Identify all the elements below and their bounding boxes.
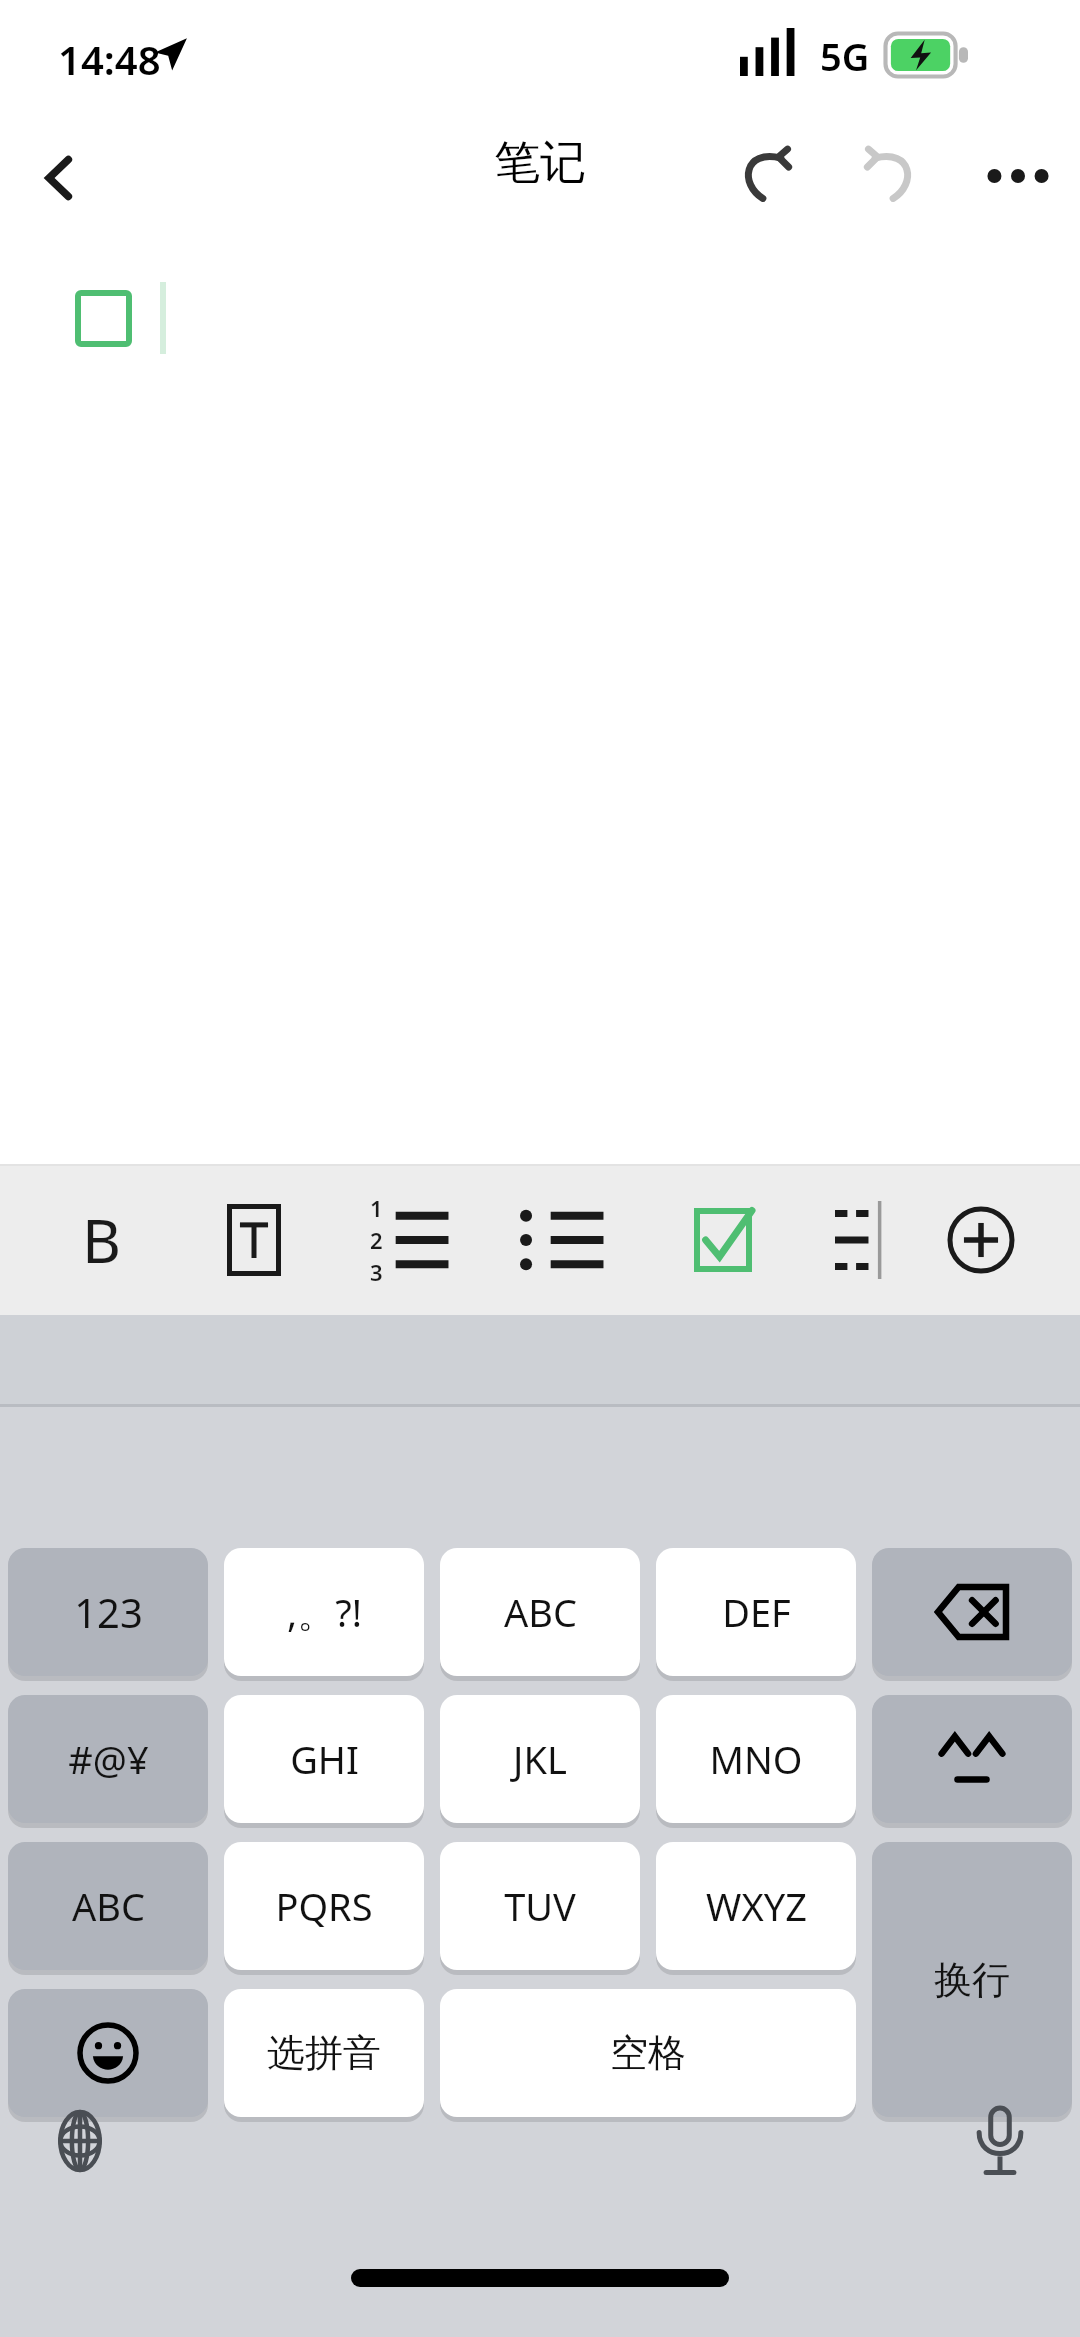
staticText: B — [82, 1199, 121, 1281]
button[interactable]: More options — [966, 124, 1070, 228]
button[interactable]: GHI — [224, 1695, 424, 1823]
button[interactable]: TUV — [440, 1842, 640, 1970]
staticText: DEF — [722, 1586, 791, 1638]
button[interactable]: Insert — [919, 1164, 1043, 1315]
button[interactable]: Switch language — [28, 2089, 132, 2193]
button[interactable]: Back — [8, 126, 112, 230]
button[interactable]: Delete — [872, 1548, 1072, 1676]
button[interactable]: DEF — [656, 1548, 856, 1676]
button[interactable]: ABC — [440, 1548, 640, 1676]
staticText: PQRS — [275, 1880, 373, 1932]
staticText: TUV — [504, 1880, 576, 1932]
button[interactable]: Emoji — [8, 1989, 208, 2117]
button[interactable]: ,。?! — [224, 1548, 424, 1676]
button[interactable]: #@¥ — [8, 1695, 208, 1823]
button[interactable]: Indent — [804, 1164, 928, 1315]
button[interactable]: PQRS — [224, 1842, 424, 1970]
button[interactable]: ABC — [8, 1842, 208, 1970]
staticText: ,。?! — [287, 1586, 362, 1638]
button[interactable]: MNO — [656, 1695, 856, 1823]
staticText: 5G — [820, 30, 870, 82]
button[interactable]: 123 — [8, 1548, 208, 1676]
button[interactable]: 空格 — [440, 1989, 856, 2117]
staticText: 123 — [74, 1585, 143, 1639]
button[interactable]: Checklist — [661, 1164, 785, 1315]
button[interactable]: Bulleted list — [501, 1164, 625, 1315]
button[interactable]: Shift — [872, 1695, 1072, 1823]
staticText: 1 — [370, 1193, 383, 1223]
staticText: 3 — [370, 1257, 383, 1287]
button[interactable]: Redo — [840, 124, 944, 228]
button[interactable]: WXYZ — [656, 1842, 856, 1970]
staticText: #@¥ — [68, 1733, 149, 1785]
staticText: 空格 — [610, 2029, 686, 2077]
staticText: 笔记 — [0, 134, 1080, 192]
staticText: 换行 — [934, 1956, 1010, 2004]
staticText: JKL — [513, 1733, 567, 1785]
button[interactable]: Numbered list — [346, 1164, 470, 1315]
staticText: 14:48 — [58, 32, 161, 86]
staticText: MNO — [709, 1733, 803, 1785]
staticText: GHI — [290, 1733, 359, 1785]
button[interactable]: Voice input — [948, 2089, 1052, 2193]
button[interactable]: JKL — [440, 1695, 640, 1823]
staticText: ABC — [504, 1586, 577, 1638]
button[interactable]: Undo — [712, 124, 816, 228]
staticText: ABC — [72, 1880, 145, 1932]
staticText: 2 — [370, 1225, 383, 1255]
button[interactable]: Bold — [39, 1164, 163, 1315]
button[interactable]: Text style — [192, 1164, 316, 1315]
staticText: WXYZ — [706, 1880, 807, 1932]
button[interactable]: 选拼音 — [224, 1989, 424, 2117]
button[interactable]: 换行 — [872, 1842, 1072, 2117]
staticText: 选拼音 — [267, 2029, 381, 2077]
